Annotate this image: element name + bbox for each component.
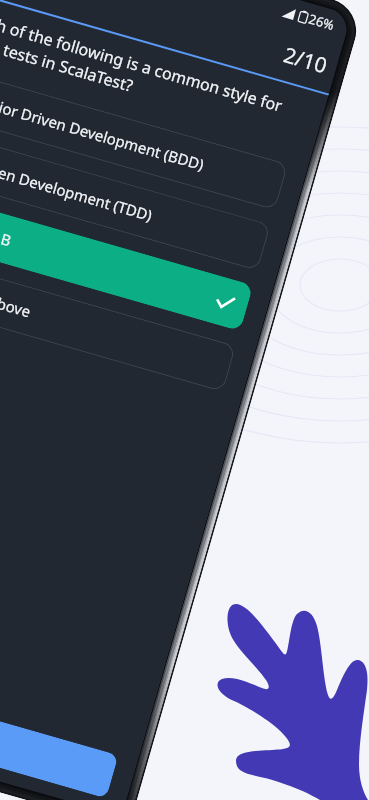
staticText: Both A and B <box>0 206 14 250</box>
staticText: 2/10 <box>280 40 330 80</box>
staticText: Behavior Driven Development (BDD) <box>0 85 206 174</box>
staticText: 26% <box>307 10 337 34</box>
staticText: Test Driven Development (TDD) <box>0 145 155 225</box>
button[interactable]: None of the above <box>0 248 236 392</box>
button[interactable]: Test Driven Development (TDD) <box>0 127 271 271</box>
staticText: tests in ScalaTest? <box>1 39 136 97</box>
staticText: Which of the following is a common style… <box>0 4 286 117</box>
button[interactable]: Next <box>0 657 119 799</box>
staticText: None of the above <box>0 266 33 321</box>
button[interactable]: Both A and B <box>0 187 253 331</box>
button[interactable]: Behavior Driven Development (BDD) <box>0 66 288 210</box>
